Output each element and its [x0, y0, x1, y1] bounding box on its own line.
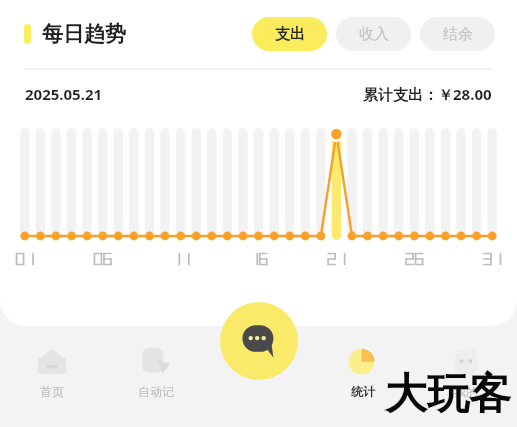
staticText: 自动记	[138, 384, 174, 399]
staticText: 结余	[443, 25, 473, 44]
button[interactable]: 首页	[0, 326, 104, 427]
button[interactable]: 自动记	[104, 326, 208, 427]
staticText: 累计支出：￥28.00	[363, 84, 492, 104]
staticText: 收入	[359, 25, 389, 44]
staticText: 我的	[454, 384, 478, 399]
button[interactable]: 收入	[336, 17, 411, 51]
button[interactable]: 统计	[311, 326, 414, 427]
staticText: 支出	[275, 25, 305, 44]
button[interactable]: 我的	[414, 326, 517, 427]
staticText: 每日趋势	[42, 21, 126, 47]
staticText: 2025.05.21	[25, 84, 103, 104]
staticText: 首页	[40, 384, 64, 399]
button[interactable]: 记一笔	[220, 302, 298, 380]
button[interactable]: 结余	[420, 17, 495, 51]
staticText: 统计	[351, 384, 375, 399]
staticText: 大玩客	[385, 368, 511, 421]
button[interactable]: 支出	[252, 17, 327, 51]
